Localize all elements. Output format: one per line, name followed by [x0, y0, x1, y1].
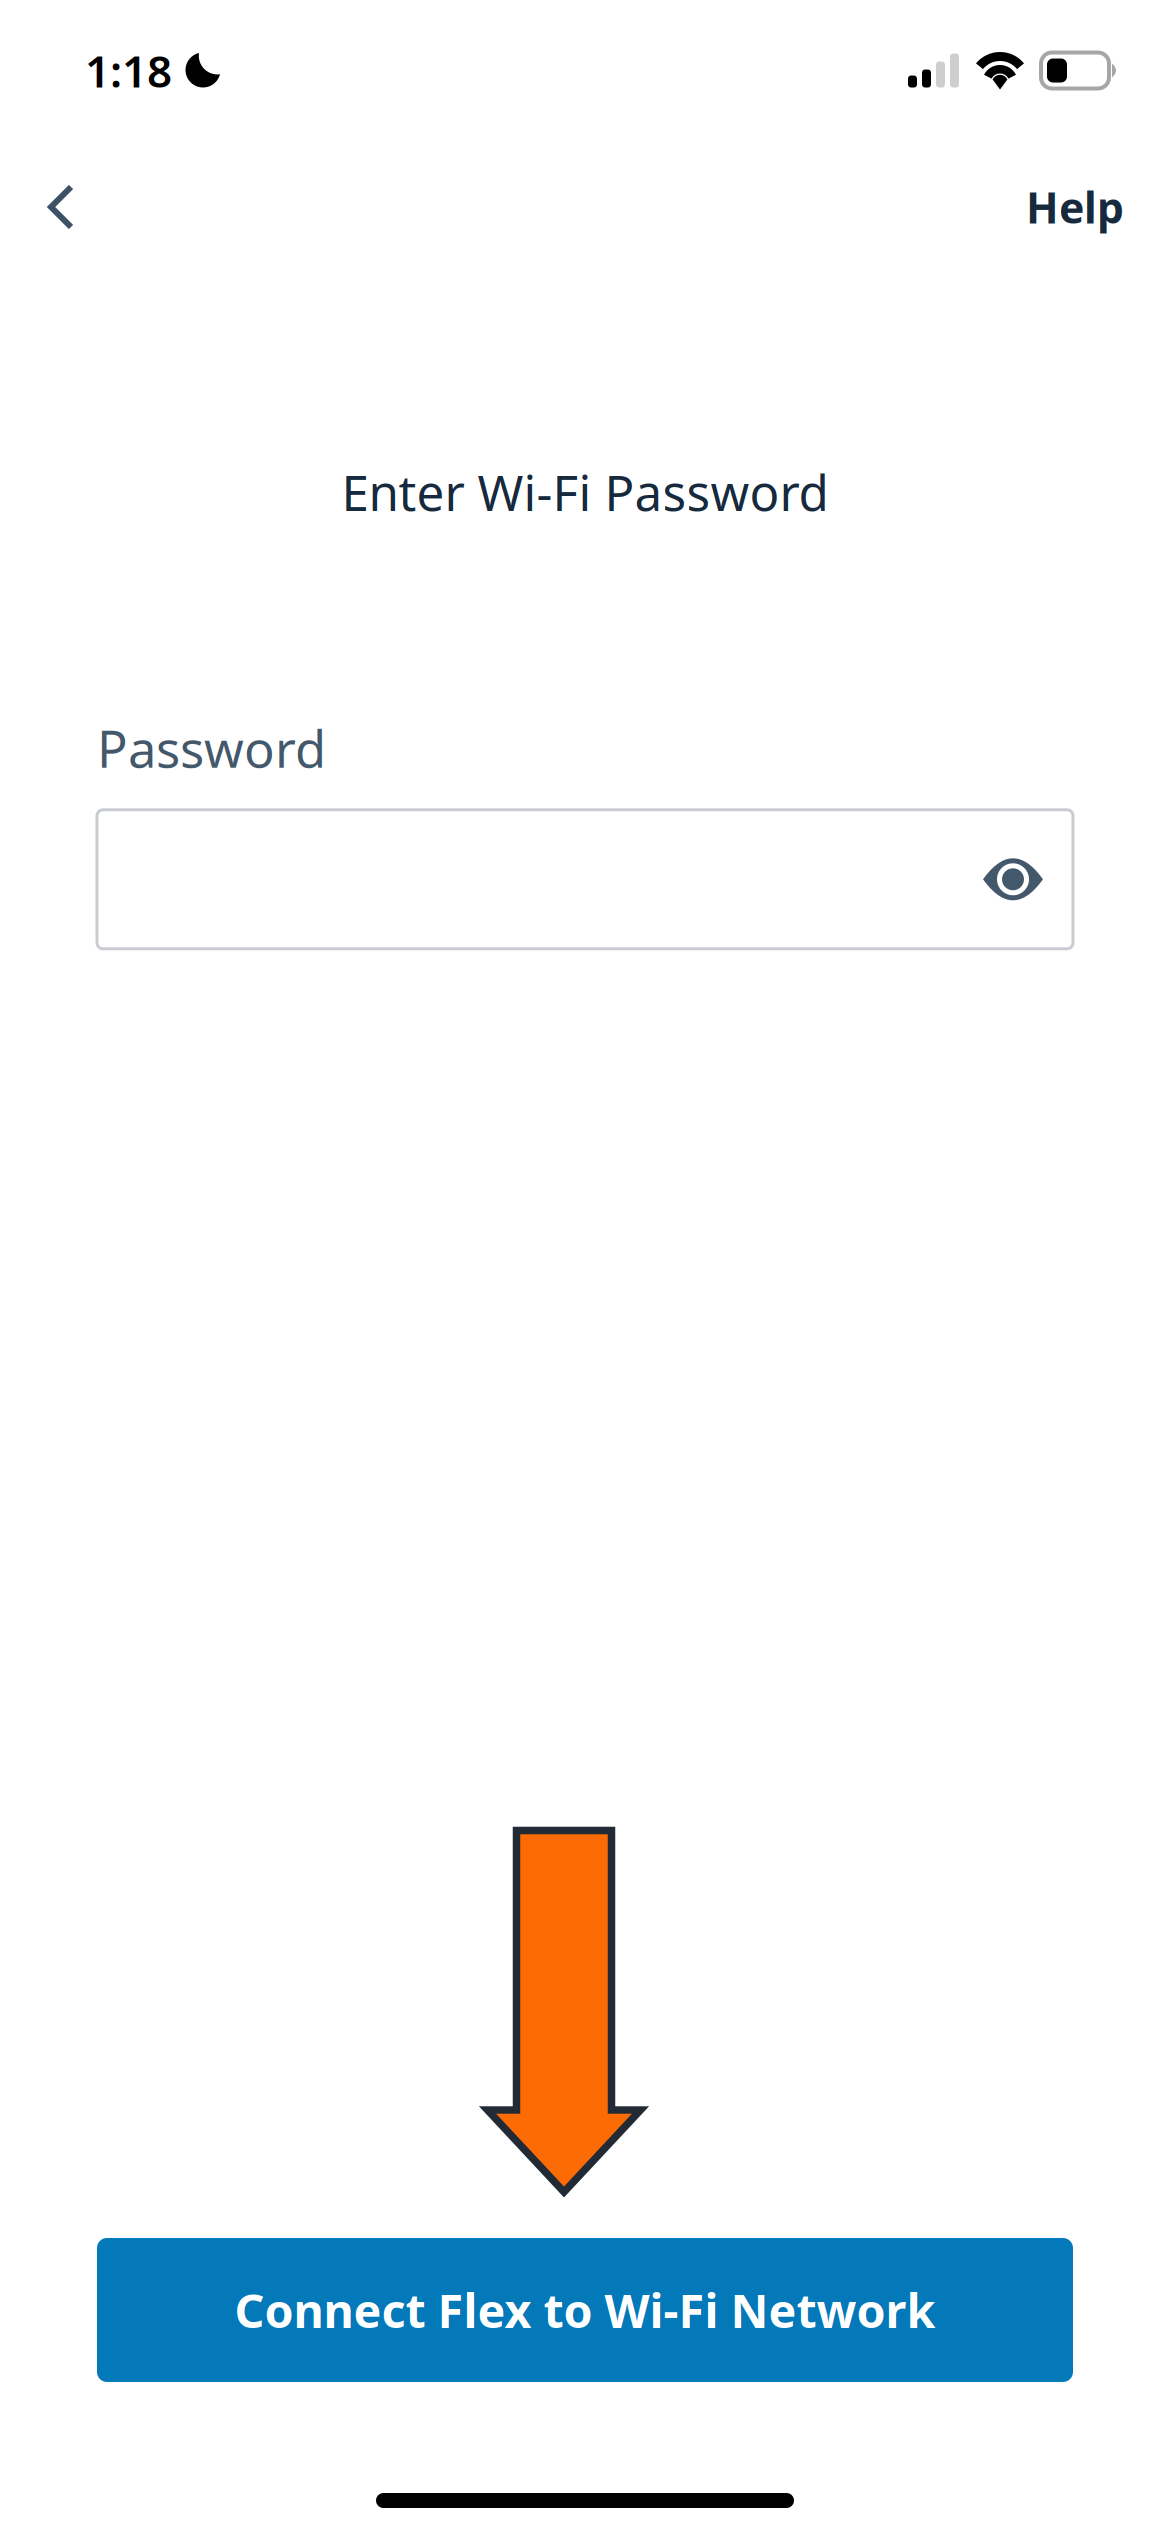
staticText: Help [1026, 179, 1124, 235]
button[interactable]: Back [0, 141, 108, 253]
button[interactable]: Help [990, 139, 1170, 255]
button[interactable]: Connect Flex to Wi-Fi Network [97, 2238, 1073, 2382]
staticText: 1:18 [85, 41, 172, 100]
staticText: Connect Flex to Wi-Fi Network [234, 2279, 935, 2341]
staticText: Password [97, 714, 326, 782]
staticText: Enter Wi-Fi Password [341, 459, 828, 524]
button[interactable]: Show password [983, 857, 1073, 901]
